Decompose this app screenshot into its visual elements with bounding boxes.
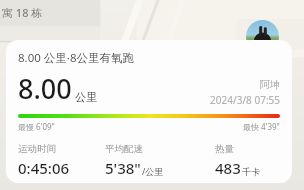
button[interactable]: 平均配速 (105, 143, 197, 178)
button[interactable]: 热量 (197, 143, 280, 178)
staticText: 平均配速 (105, 143, 143, 155)
staticText: 最快 4'39" (243, 121, 280, 132)
staticText: 阿坤 (260, 78, 280, 91)
staticText: /公里 (142, 165, 164, 177)
staticText: 千卡 (242, 166, 260, 177)
button[interactable]: 8.00 公里·8公里有氧跑 (6, 40, 292, 183)
staticText: 8.00 (18, 70, 72, 107)
button[interactable]: 运动时间 (18, 143, 105, 178)
staticText: 公里 (75, 90, 97, 104)
button[interactable]: User avatar 阿坤 (246, 20, 279, 53)
staticText: 8.00 公里·8公里有氧跑 (18, 50, 134, 66)
staticText: 5'38" (105, 158, 141, 178)
staticText: 2024/3/8 07:55 (210, 93, 280, 107)
staticText: 483 (215, 158, 241, 178)
staticText: 寓 18 栋 (2, 5, 43, 20)
staticText: 0:45:06 (18, 158, 70, 178)
staticText: 热量 (215, 143, 234, 155)
staticText: 最慢 6'09" (18, 121, 55, 132)
staticText: 运动时间 (18, 143, 56, 155)
